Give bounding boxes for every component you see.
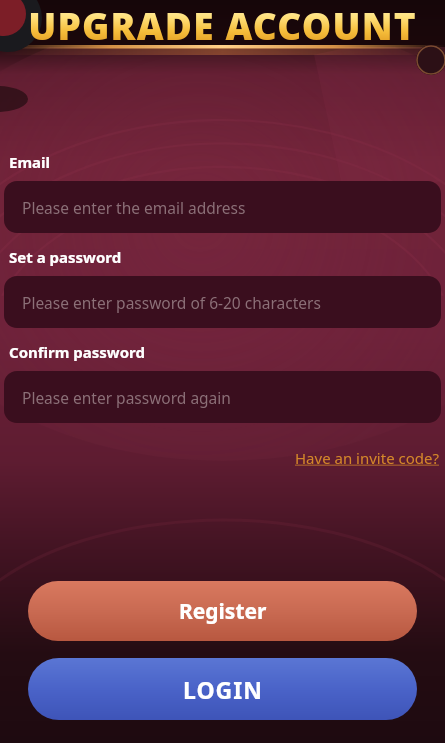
staticText: Confirm password xyxy=(9,342,145,362)
staticText: Email xyxy=(9,152,50,172)
button[interactable]: LOGIN xyxy=(28,658,417,720)
button[interactable]: Close xyxy=(416,45,445,75)
button[interactable]: Please enter password again xyxy=(4,371,441,423)
button[interactable]: Have an invite code? xyxy=(293,446,441,470)
staticText: UPGRADE ACCOUNT xyxy=(28,0,417,47)
staticText: Please enter password again xyxy=(22,387,231,408)
button[interactable]: Register xyxy=(28,581,417,641)
staticText: Have an invite code? xyxy=(295,448,439,468)
staticText: Please enter password of 6-20 characters xyxy=(22,292,321,313)
staticText: Set a password xyxy=(9,247,122,267)
staticText: Please enter the email address xyxy=(22,197,246,218)
button[interactable]: Please enter the email address xyxy=(4,181,441,233)
staticText: LOGIN xyxy=(183,674,263,705)
staticText: Register xyxy=(179,597,267,626)
button[interactable]: Please enter password of 6-20 characters xyxy=(4,276,441,328)
